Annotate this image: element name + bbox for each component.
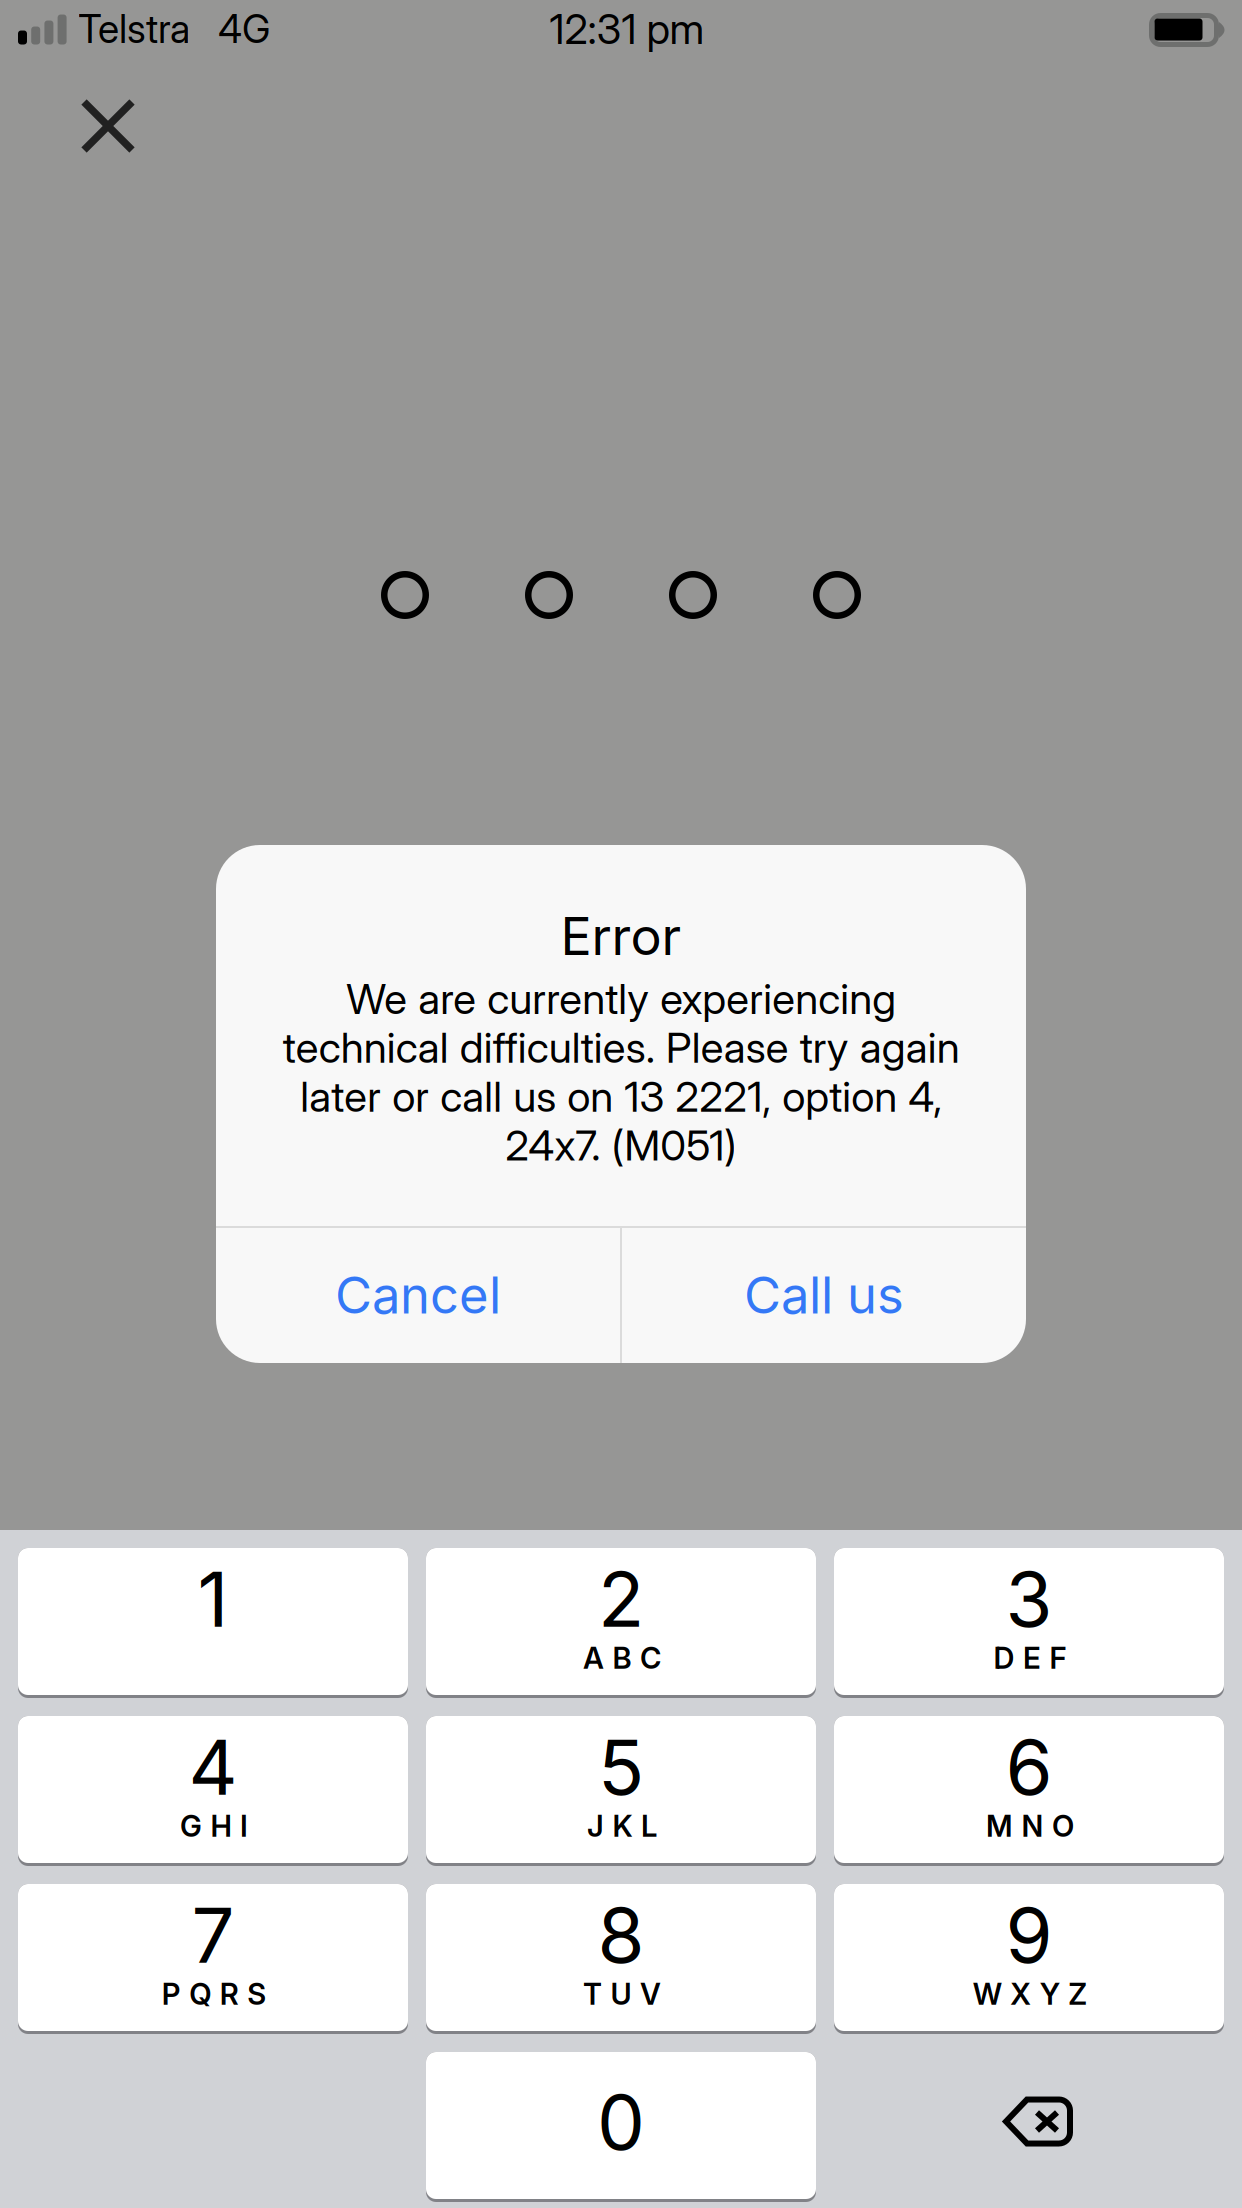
staticText: MNO xyxy=(986,1808,1074,1844)
button[interactable]: 7 xyxy=(18,1884,408,2031)
staticText: We are currently experiencing technical … xyxy=(282,973,959,1171)
staticText: 0 xyxy=(597,2076,645,2168)
staticText: Telstra xyxy=(78,6,190,52)
staticText: Call us xyxy=(744,1264,904,1326)
staticText: DEF xyxy=(993,1640,1066,1676)
staticText: JKL xyxy=(587,1808,657,1844)
staticText: 2 xyxy=(598,1553,644,1645)
button[interactable]: Delete xyxy=(834,2052,1224,2199)
staticText: Cancel xyxy=(335,1264,501,1326)
staticText: Error xyxy=(560,904,681,967)
staticText: PQRS xyxy=(162,1976,266,2012)
staticText: 4 xyxy=(188,1721,237,1813)
staticText: GHI xyxy=(180,1808,248,1844)
button[interactable]: Call us xyxy=(622,1227,1026,1363)
staticText: 7 xyxy=(191,1889,234,1981)
staticText: TUV xyxy=(583,1976,661,2012)
staticText: 5 xyxy=(598,1721,644,1813)
staticText: 8 xyxy=(597,1889,644,1981)
button[interactable]: Cancel xyxy=(216,1227,620,1363)
staticText: WXYZ xyxy=(973,1976,1087,2012)
button[interactable]: 2 xyxy=(426,1548,816,1695)
button[interactable]: 9 xyxy=(834,1884,1224,2031)
button[interactable]: 4 xyxy=(18,1716,408,1863)
staticText: 6 xyxy=(1005,1721,1052,1813)
button[interactable]: 5 xyxy=(426,1716,816,1863)
button[interactable]: Close xyxy=(53,71,163,181)
button[interactable]: 1 xyxy=(18,1548,408,1695)
staticText: 1 xyxy=(197,1553,228,1645)
staticText: ABC xyxy=(583,1640,661,1676)
button[interactable]: 6 xyxy=(834,1716,1224,1863)
button[interactable]: 8 xyxy=(426,1884,816,2031)
button[interactable]: 0 xyxy=(426,2052,816,2199)
staticText: 9 xyxy=(1005,1889,1052,1981)
button[interactable]: 3 xyxy=(834,1548,1224,1695)
staticText: 4G xyxy=(218,6,270,52)
staticText: 12:31 pm xyxy=(549,4,704,54)
staticText: 3 xyxy=(1005,1553,1052,1645)
